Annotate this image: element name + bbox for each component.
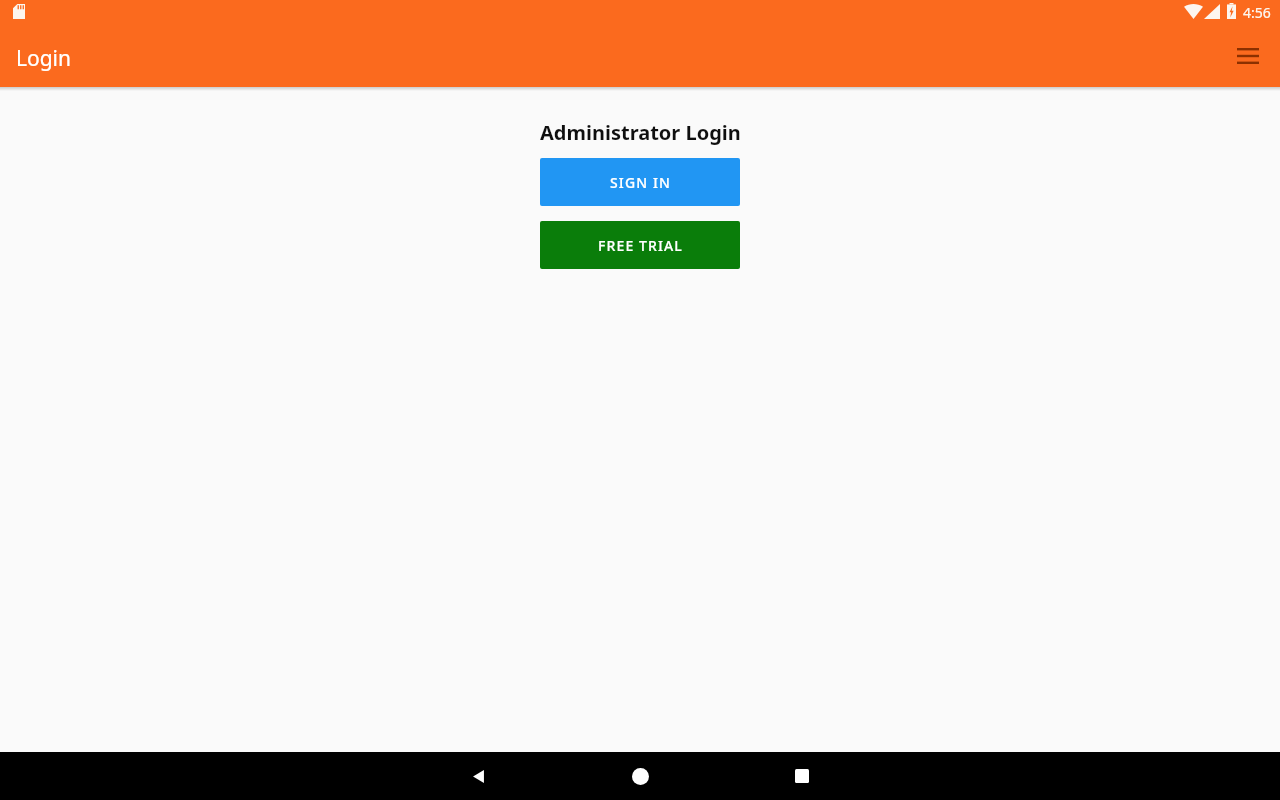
button[interactable]: Back	[454, 752, 502, 800]
staticText: SIGN IN	[610, 173, 671, 192]
staticText: Login	[16, 44, 72, 73]
button[interactable]: Home	[616, 752, 664, 800]
staticText: FREE TRIAL	[598, 236, 683, 255]
button[interactable]: Open navigation menu	[1224, 32, 1272, 80]
button[interactable]: FREE TRIAL	[540, 221, 740, 269]
button[interactable]: Recent apps	[778, 752, 826, 800]
button[interactable]: SIGN IN	[540, 158, 740, 206]
staticText: Administrator Login	[540, 119, 741, 146]
staticText: 4:56	[1243, 3, 1271, 22]
